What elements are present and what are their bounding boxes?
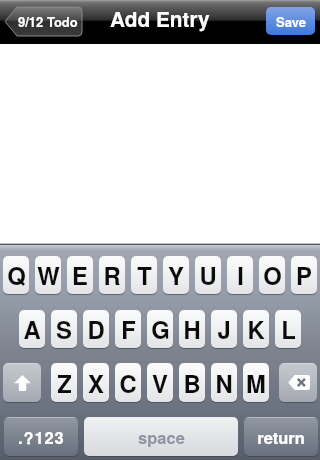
staticText: space [138, 425, 185, 449]
staticText: F [121, 312, 136, 346]
staticText: M [246, 366, 266, 400]
staticText: E [72, 258, 88, 292]
staticText: return [257, 425, 305, 449]
button[interactable]: G [147, 310, 173, 349]
staticText: D [87, 312, 105, 346]
button[interactable]: F [115, 310, 141, 349]
button[interactable]: Y [163, 256, 189, 295]
button[interactable]: W [35, 256, 61, 295]
staticText: O [263, 258, 282, 292]
staticText: V [152, 366, 168, 400]
button[interactable]: S [51, 310, 77, 349]
button[interactable]: M [243, 363, 269, 403]
button[interactable]: O [259, 256, 285, 295]
staticText: R [103, 258, 121, 292]
staticText: I [237, 258, 244, 292]
staticText: W [37, 258, 60, 292]
button[interactable]: P [291, 256, 317, 295]
button[interactable]: I [227, 256, 253, 295]
button[interactable]: Back to 9/12 Todo [4, 7, 82, 36]
button[interactable]: H [179, 310, 205, 349]
staticText: X [88, 366, 104, 400]
button[interactable]: Save [266, 7, 315, 35]
button[interactable] [279, 363, 317, 403]
button[interactable]: C [115, 363, 141, 403]
staticText: S [56, 312, 72, 346]
staticText: G [151, 312, 170, 346]
button[interactable]: return [244, 417, 318, 457]
button[interactable]: space [84, 417, 238, 457]
button[interactable]: Q [3, 256, 29, 295]
button[interactable]: D [83, 310, 109, 349]
staticText: J [217, 312, 231, 346]
button[interactable]: R [99, 256, 125, 295]
staticText: Q [7, 258, 26, 292]
button[interactable]: K [243, 310, 269, 349]
button[interactable]: E [67, 256, 93, 295]
button[interactable]: A [19, 310, 45, 349]
staticText: Save [276, 12, 306, 31]
button[interactable]: J [211, 310, 237, 349]
staticText: T [137, 258, 152, 292]
staticText: P [296, 258, 312, 292]
button[interactable]: .?123 [4, 417, 78, 457]
staticText: B [183, 366, 201, 400]
button[interactable]: T [131, 256, 157, 295]
staticText: .?123 [18, 425, 65, 449]
button[interactable]: N [211, 363, 237, 403]
button[interactable]: L [275, 310, 301, 349]
staticText: K [247, 312, 265, 346]
button[interactable]: V [147, 363, 173, 403]
button[interactable]: X [83, 363, 109, 403]
button[interactable]: Z [51, 363, 77, 403]
staticText: U [199, 258, 217, 292]
staticText: L [281, 312, 296, 346]
button[interactable] [3, 363, 41, 403]
staticText: Y [168, 258, 184, 292]
staticText: A [23, 312, 41, 346]
staticText: N [215, 366, 233, 400]
button[interactable]: U [195, 256, 221, 295]
button[interactable]: B [179, 363, 205, 403]
staticText: Z [57, 366, 72, 400]
staticText: 9/12 Todo [18, 12, 78, 31]
staticText: Add Entry [110, 4, 210, 34]
staticText: C [119, 366, 137, 400]
staticText: H [183, 312, 201, 346]
